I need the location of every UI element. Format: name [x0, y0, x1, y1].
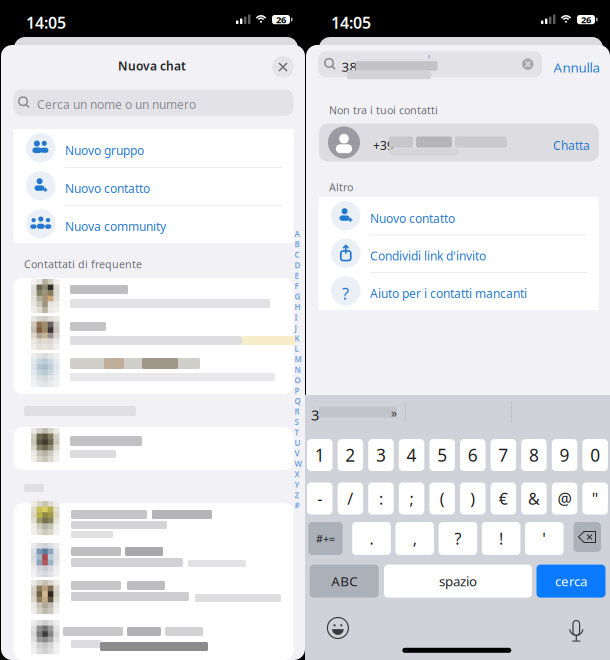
- staticText: L: [294, 343, 298, 354]
- staticText: 1: [315, 443, 325, 466]
- button[interactable]: cerca: [536, 565, 605, 598]
- staticText: 3: [376, 443, 386, 466]
- button[interactable]: Annulla: [553, 58, 599, 76]
- staticText: E: [294, 270, 298, 281]
- button[interactable]: ABC: [310, 565, 379, 598]
- staticText: Nuovo contatto: [65, 180, 150, 196]
- button[interactable]: 6: [460, 439, 485, 471]
- staticText: A: [294, 228, 299, 239]
- staticText: J: [294, 323, 296, 333]
- staticText: €: [499, 488, 508, 509]
- staticText: #+=: [316, 531, 335, 546]
- staticText: @: [557, 488, 571, 509]
- staticText: I: [294, 312, 297, 323]
- staticText: 14:05: [331, 12, 371, 33]
- button[interactable]: ;: [399, 482, 424, 514]
- staticText: P: [294, 385, 299, 396]
- staticText: Chatta: [553, 137, 590, 153]
- button[interactable]: -: [307, 482, 332, 514]
- staticText: Y: [294, 479, 299, 490]
- staticText: ;: [410, 488, 414, 509]
- staticText: B: [294, 239, 299, 249]
- button[interactable]: €: [491, 482, 516, 514]
- button[interactable]: 5: [429, 439, 455, 471]
- staticText: cerca: [555, 572, 587, 590]
- button[interactable]: &: [521, 482, 547, 514]
- button[interactable]: ": [582, 482, 608, 514]
- button[interactable]: Dettatura: [569, 616, 584, 639]
- button[interactable]: 7: [491, 439, 516, 471]
- staticText: G: [294, 291, 300, 302]
- staticText: F: [294, 281, 298, 291]
- button[interactable]: 8: [521, 439, 547, 471]
- staticText: -: [317, 488, 322, 509]
- button[interactable]: 9: [552, 439, 577, 471]
- staticText: Nuovo gruppo: [65, 142, 144, 158]
- button[interactable]: Condividi link d'invito: [318, 234, 598, 272]
- staticText: :: [379, 488, 383, 509]
- button[interactable]: Nuovo contatto: [318, 197, 598, 235]
- button[interactable]: @: [552, 482, 577, 514]
- button[interactable]: 38: [318, 51, 542, 77]
- button[interactable]: .: [352, 522, 391, 555]
- staticText: 9: [559, 443, 569, 466]
- button[interactable]: 3: [368, 439, 394, 471]
- staticText: X: [294, 469, 299, 479]
- button[interactable]: Cerca un nome o un numero: [13, 89, 293, 115]
- staticText: !: [499, 528, 503, 549]
- button[interactable]: Cancella: [573, 522, 601, 552]
- staticText: Z: [294, 490, 299, 500]
- button[interactable]: ,: [395, 522, 434, 555]
- button[interactable]: 0: [582, 439, 608, 471]
- button[interactable]: ': [525, 522, 564, 555]
- staticText: 5: [437, 443, 447, 466]
- button[interactable]: +39: [319, 123, 599, 161]
- button[interactable]: ?: [439, 522, 477, 555]
- staticText: 2: [345, 443, 355, 466]
- staticText: K: [294, 333, 299, 344]
- button[interactable]: Nuovo gruppo: [13, 129, 293, 167]
- staticText: Aiuto per i contatti mancanti: [370, 285, 527, 301]
- staticText: (: [440, 488, 445, 509]
- staticText: S: [294, 417, 298, 427]
- button[interactable]: 4: [399, 439, 424, 471]
- staticText: Annulla: [553, 58, 599, 76]
- staticText: 7: [498, 443, 508, 466]
- staticText: Nuova chat: [118, 58, 186, 74]
- button[interactable]: spazio: [384, 565, 532, 598]
- button[interactable]: ): [460, 482, 485, 514]
- staticText: &: [528, 488, 540, 509]
- staticText: spazio: [439, 572, 477, 590]
- staticText: 26: [276, 13, 286, 26]
- staticText: ': [542, 528, 546, 549]
- staticText: 14:05: [26, 12, 66, 33]
- staticText: T: [294, 427, 299, 438]
- staticText: 3: [311, 405, 319, 424]
- staticText: 38: [341, 58, 357, 75]
- staticText: R: [294, 406, 299, 417]
- staticText: U: [294, 437, 300, 448]
- button[interactable]: 2: [338, 439, 363, 471]
- staticText: 8: [529, 443, 539, 466]
- button[interactable]: !: [482, 522, 520, 555]
- button[interactable]: ?: [318, 272, 598, 310]
- staticText: 6: [468, 443, 478, 466]
- button[interactable]: Nuova community: [13, 205, 293, 243]
- button[interactable]: (: [429, 482, 455, 514]
- button[interactable]: Chiudi: [272, 56, 294, 78]
- button[interactable]: Emoji: [327, 617, 348, 638]
- staticText: Cerca un nome o un numero: [37, 96, 196, 112]
- staticText: 0: [590, 443, 600, 466]
- staticText: D: [294, 260, 300, 270]
- staticText: #: [294, 500, 299, 511]
- staticText: M: [294, 354, 301, 364]
- button[interactable]: /: [338, 482, 363, 514]
- button[interactable]: Nuovo contatto: [13, 167, 293, 205]
- button[interactable]: 1: [307, 439, 332, 471]
- staticText: 26: [581, 13, 591, 26]
- staticText: Nuova community: [65, 218, 166, 234]
- staticText: ?: [454, 528, 461, 549]
- button[interactable]: #+=: [308, 522, 343, 555]
- button[interactable]: :: [368, 482, 394, 514]
- staticText: ABC: [331, 572, 357, 590]
